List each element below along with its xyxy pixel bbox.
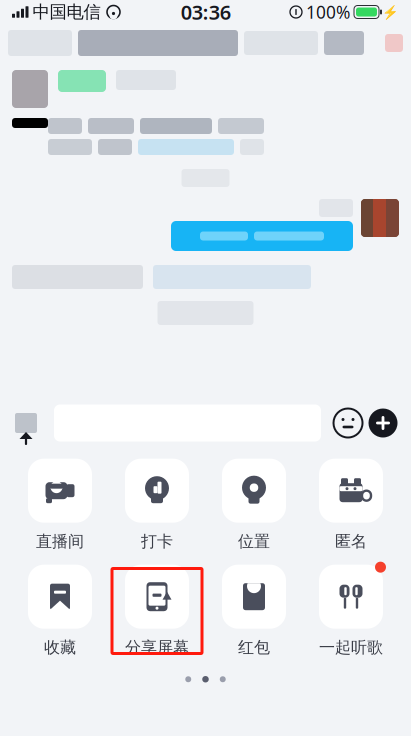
button[interactable]: 匿名 [308,462,394,548]
button[interactable]: 输入框 [42,404,331,441]
staticText: 中国电信 [32,1,100,23]
button[interactable]: 分享屏幕 [114,568,200,654]
staticText: 红包 [238,638,270,657]
staticText: 100% [306,0,350,23]
staticText: 打卡 [141,532,173,551]
button[interactable]: 收藏 [17,568,103,654]
button[interactable]: 打卡 [114,462,200,548]
staticText: 03:36 [181,0,231,25]
button[interactable]: 表情 [331,404,365,442]
staticText: 分享屏幕 [125,638,189,657]
button[interactable]: 位置 [211,462,297,548]
staticText: ⚡ [382,4,399,20]
button[interactable]: 一起听歌 [308,568,394,654]
staticText: 一起听歌 [319,638,383,657]
staticText: 位置 [238,532,270,551]
staticText: 收藏 [44,638,76,657]
staticText: 直播间 [36,532,84,551]
button[interactable]: 红包 [211,568,297,654]
staticText: 匿名 [335,532,367,551]
button[interactable]: 更多 [365,404,401,442]
button[interactable]: 语音输入 [10,404,42,442]
button[interactable]: 直播间 [17,462,103,548]
